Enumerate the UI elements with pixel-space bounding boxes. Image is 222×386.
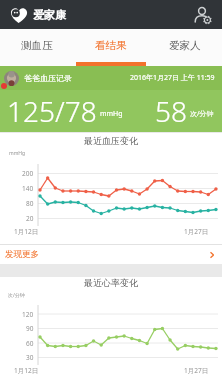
staticText: 200 <box>22 169 34 178</box>
staticText: 125/78 <box>7 92 97 130</box>
staticText: 58 <box>155 92 187 130</box>
staticText: 1月27日 <box>184 366 209 375</box>
staticText: 140 <box>22 184 34 193</box>
button[interactable]: 看结果 <box>74 29 148 66</box>
staticText: mmHg <box>9 150 26 157</box>
staticText: 最近心率变化 <box>84 277 138 288</box>
button[interactable] <box>193 5 213 25</box>
staticText: 20 <box>26 214 34 223</box>
staticText: 1月12日 <box>14 366 39 375</box>
button[interactable]: 测血压 <box>0 29 74 66</box>
staticText: 发现更多 <box>5 249 39 260</box>
staticText: 1月12日 <box>14 227 39 236</box>
staticText: mmHg <box>100 109 123 119</box>
staticText: 30 <box>26 353 34 362</box>
staticText: 爱家康 <box>33 8 66 22</box>
button[interactable]: 发现更多 <box>0 245 222 264</box>
staticText: 60 <box>26 339 34 348</box>
staticText: 120 <box>22 310 34 319</box>
staticText: 80 <box>26 199 34 208</box>
staticText: 看结果 <box>95 39 127 52</box>
staticText: 次/分钟 <box>190 109 214 119</box>
staticText: 爸爸血压记录 <box>24 73 72 83</box>
staticText: 次/分钟 <box>8 292 25 299</box>
staticText: 最近血压变化 <box>84 135 138 146</box>
staticText: 2016年1月27日 上午 11:59 <box>130 73 215 83</box>
staticText: 90 <box>26 324 34 333</box>
button[interactable]: 125/78 <box>0 90 222 132</box>
staticText: 1月27日 <box>184 227 209 236</box>
staticText: 测血压 <box>21 39 53 52</box>
button[interactable]: 爱家人 <box>148 29 222 66</box>
staticText: 爱家人 <box>169 39 201 52</box>
